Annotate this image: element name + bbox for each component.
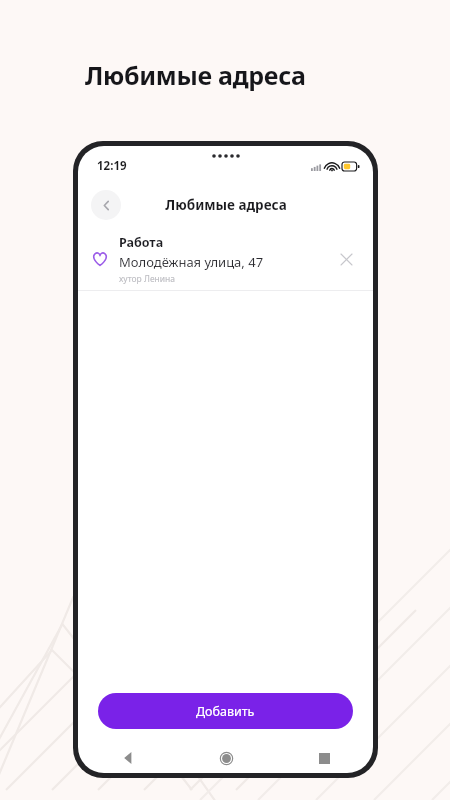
button[interactable]: Домой bbox=[177, 743, 275, 773]
staticText: Работа bbox=[119, 234, 164, 251]
staticText: 12:19 bbox=[97, 158, 127, 174]
button[interactable]: Назад bbox=[78, 743, 177, 773]
button[interactable]: Добавить bbox=[98, 693, 353, 729]
button[interactable]: Назад bbox=[91, 190, 121, 220]
staticText: хутор Ленина bbox=[119, 273, 176, 285]
button[interactable]: Недавние bbox=[275, 743, 373, 773]
button[interactable]: Удалить bbox=[333, 246, 359, 272]
staticText: Добавить bbox=[196, 703, 255, 720]
staticText: Любимые адреса bbox=[165, 196, 287, 214]
button[interactable]: Работа bbox=[78, 228, 373, 290]
staticText: Молодёжная улица, 47 bbox=[119, 253, 264, 271]
staticText: Любимые адреса bbox=[85, 58, 306, 92]
